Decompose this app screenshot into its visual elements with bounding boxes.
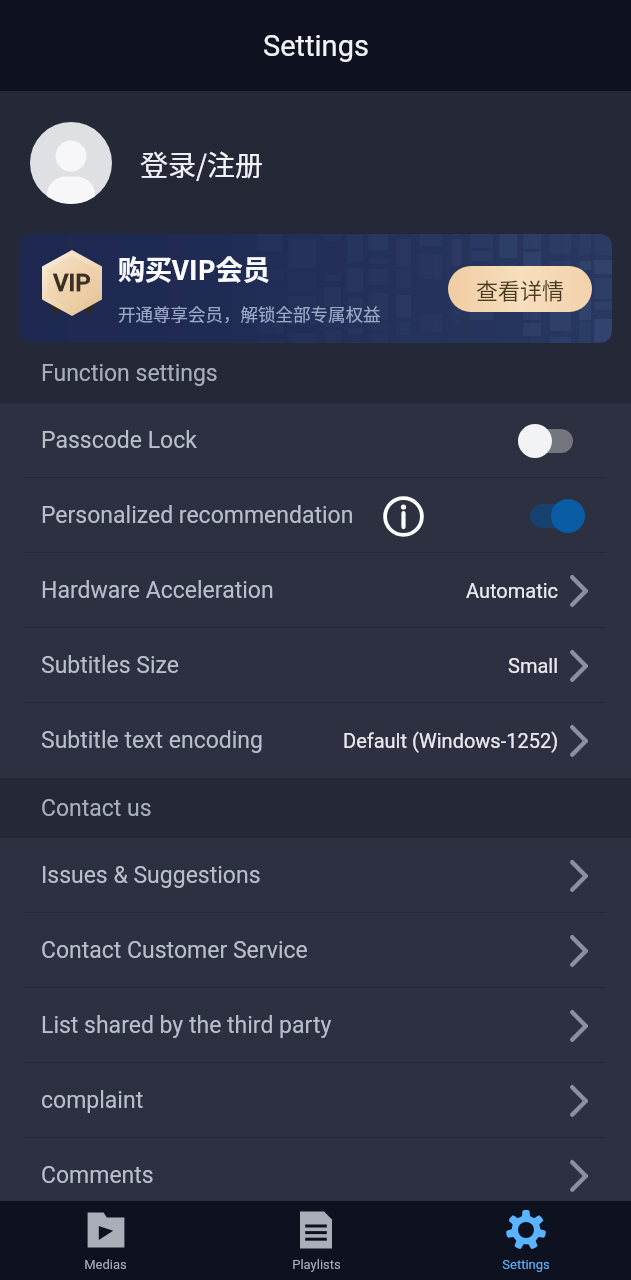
- button[interactable]: Subtitles Size: [0, 628, 631, 703]
- staticText: Function settings: [41, 360, 218, 387]
- button[interactable]: Hardware Acceleration: [0, 553, 631, 628]
- staticText: Subtitles Size: [41, 652, 179, 679]
- staticText: VIP: [53, 269, 91, 297]
- staticText: Passcode Lock: [41, 427, 197, 454]
- staticText: Subtitle text encoding: [41, 727, 263, 754]
- staticText: Settings: [263, 29, 369, 63]
- button[interactable]: List shared by the third party: [0, 988, 631, 1063]
- button[interactable]: Comments: [0, 1138, 631, 1213]
- button[interactable]: Playlists: [211, 1201, 421, 1280]
- staticText: 开通尊享会员，解锁全部专属权益: [118, 301, 381, 326]
- button[interactable]: Contact Customer Service: [0, 913, 631, 988]
- button[interactable]: Off: [518, 423, 585, 459]
- button[interactable]: complaint: [0, 1063, 631, 1138]
- staticText: Playlists: [292, 1257, 341, 1272]
- staticText: Settings: [502, 1257, 550, 1272]
- staticText: Contact us: [41, 795, 152, 822]
- staticText: Hardware Acceleration: [41, 577, 274, 604]
- staticText: Contact Customer Service: [41, 937, 308, 964]
- staticText: Medias: [84, 1257, 127, 1272]
- staticText: Comments: [41, 1162, 154, 1189]
- button[interactable]: On: [518, 498, 585, 534]
- button[interactable]: 查看详情: [448, 266, 592, 312]
- staticText: Personalized recommendation: [41, 502, 354, 529]
- staticText: Small: [508, 654, 559, 677]
- button[interactable]: VIP: [19, 234, 612, 343]
- button[interactable]: 登录/注册: [0, 91, 631, 234]
- staticText: complaint: [41, 1087, 144, 1114]
- staticText: 登录/注册: [140, 144, 263, 185]
- staticText: Automatic: [466, 579, 559, 602]
- button[interactable]: Information: [381, 494, 425, 538]
- button[interactable]: Medias: [0, 1201, 211, 1280]
- staticText: List shared by the third party: [41, 1012, 332, 1039]
- staticText: 购买VIP会员: [118, 249, 270, 288]
- staticText: Issues & Suggestions: [41, 862, 261, 889]
- button[interactable]: Personalized recommendation: [0, 478, 631, 553]
- button[interactable]: Settings: [421, 1201, 631, 1280]
- button[interactable]: Passcode Lock: [0, 403, 631, 478]
- staticText: Default (Windows-1252): [343, 729, 559, 752]
- button[interactable]: Issues & Suggestions: [0, 838, 631, 913]
- staticText: 查看详情: [476, 273, 565, 305]
- button[interactable]: Subtitle text encoding: [0, 703, 631, 778]
